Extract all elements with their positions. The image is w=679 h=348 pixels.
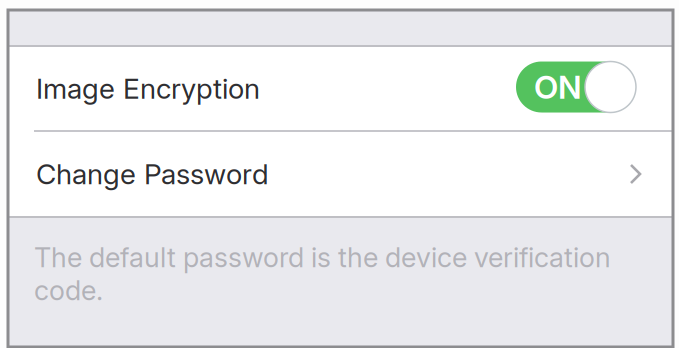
button[interactable]: Image Encryption, on (516, 61, 636, 115)
staticText: The default password is the device verif… (34, 241, 611, 307)
staticText: ON (534, 68, 582, 106)
button[interactable]: Change Password (8, 132, 673, 216)
staticText: Image Encryption (36, 72, 260, 105)
staticText: Change Password (36, 157, 269, 191)
